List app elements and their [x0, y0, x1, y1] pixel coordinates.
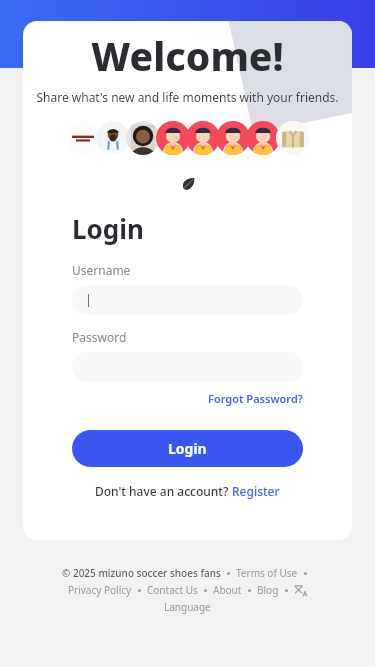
staticText: Login: [72, 211, 144, 246]
staticText: Forgot Password?: [208, 391, 303, 406]
button[interactable]: User avatar: [66, 121, 100, 155]
button[interactable]: User avatar: [96, 121, 130, 155]
button[interactable]: User avatar: [156, 121, 190, 155]
staticText: About: [213, 583, 242, 597]
staticText: Blog: [257, 583, 279, 597]
staticText: Terms of Use: [236, 566, 298, 580]
button[interactable]: Login: [72, 430, 303, 467]
staticText: Don't have an account?: [95, 483, 232, 499]
other: Logo: [181, 177, 195, 191]
button[interactable]: User avatar: [126, 121, 160, 155]
staticText: © 2025 mizuno soccer shoes fans: [62, 566, 221, 580]
button[interactable]: Register: [232, 483, 280, 499]
staticText: Username: [72, 262, 131, 278]
button[interactable]: About: [213, 583, 242, 597]
button[interactable]: Forgot Password?: [208, 391, 303, 406]
button[interactable]: Terms of Use: [236, 566, 298, 580]
button[interactable]: User avatar: [186, 121, 220, 155]
staticText: Language: [164, 600, 211, 614]
staticText: Privacy Policy: [68, 583, 132, 597]
staticText: Password: [72, 329, 127, 345]
button[interactable]: Privacy Policy: [68, 583, 132, 597]
staticText: Login: [168, 439, 207, 458]
button[interactable]: User avatar: [246, 121, 280, 155]
staticText: Contact Us: [147, 583, 198, 597]
staticText: Welcome!: [91, 29, 284, 82]
button[interactable]: Contact Us: [147, 583, 198, 597]
staticText: Share what's new and life moments with y…: [36, 89, 339, 105]
button[interactable]: User avatar: [276, 121, 310, 155]
staticText: Register: [232, 483, 280, 499]
button[interactable]: [72, 285, 303, 315]
button[interactable]: Blog: [257, 583, 279, 597]
button[interactable]: User avatar: [216, 121, 250, 155]
button[interactable]: Language: [294, 584, 307, 597]
